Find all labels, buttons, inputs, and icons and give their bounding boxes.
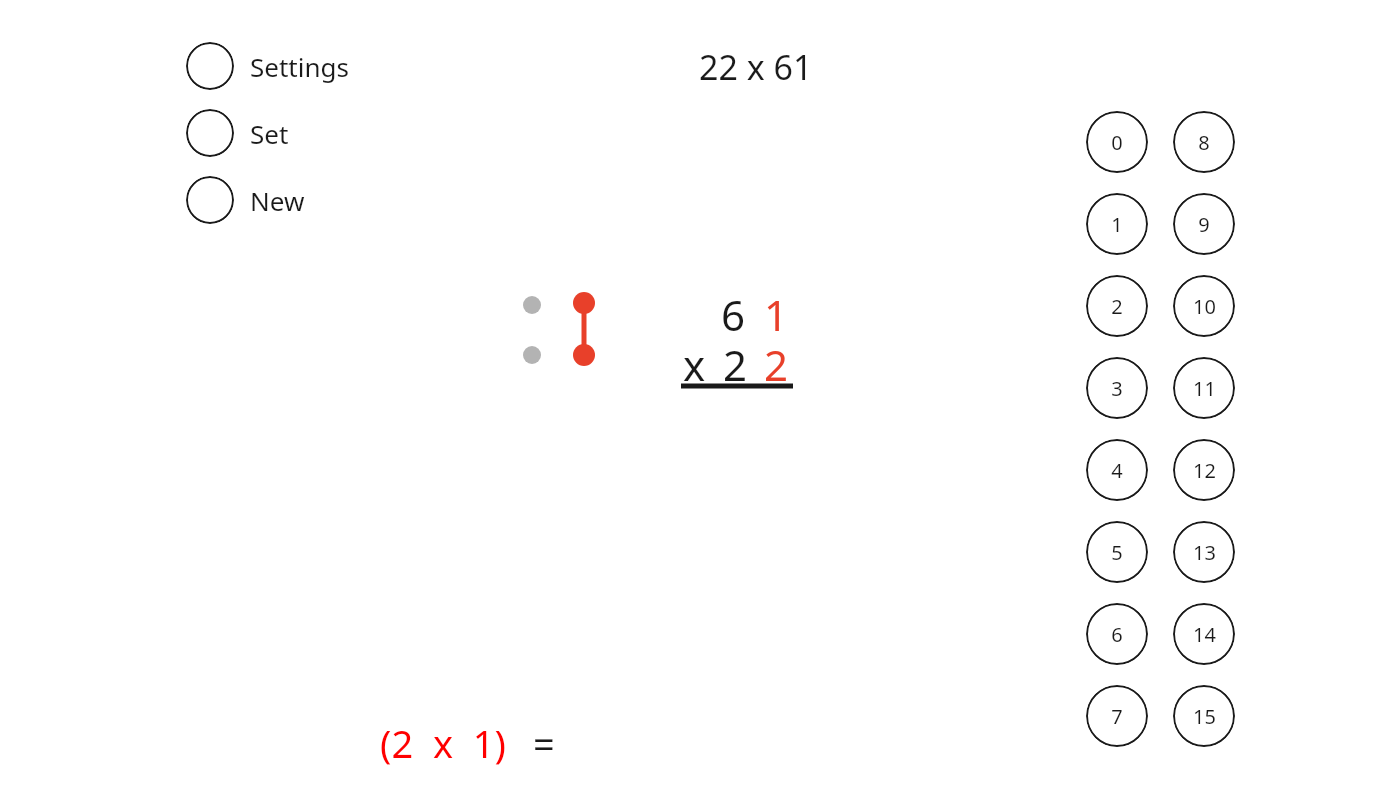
staticText: 6 [721,286,746,343]
button[interactable]: Number 11 [1173,357,1235,419]
button[interactable]: Number 10 [1173,275,1235,337]
button[interactable]: Number 5 [1086,521,1148,583]
staticText: 4 [1111,457,1123,484]
button[interactable]: Number 1 [1086,193,1148,255]
staticText: 0 [1111,129,1123,156]
staticText: 10 [1193,293,1216,320]
staticText: Set [250,116,289,151]
button[interactable]: Number 7 [1086,685,1148,747]
button[interactable]: Number 12 [1173,439,1235,501]
staticText: 8 [1198,129,1210,156]
staticText: Settings [250,49,349,84]
button[interactable]: Number 8 [1173,111,1235,173]
button[interactable]: Number 2 [1086,275,1148,337]
staticText: x [683,336,706,393]
staticText: 1 [764,286,789,343]
button[interactable]: Number 3 [1086,357,1148,419]
staticText: 13 [1193,539,1216,566]
staticText: 1 [1111,211,1123,238]
button[interactable]: Number 9 [1173,193,1235,255]
button[interactable]: Number 0 [1086,111,1148,173]
staticText: 12 [1193,457,1216,484]
button[interactable]: Number 15 [1173,685,1235,747]
staticText: (2 x 1) [380,717,506,769]
staticText: 6 [1111,621,1123,648]
staticText: 9 [1198,211,1210,238]
staticText: 7 [1111,703,1123,730]
staticText: 2 [1111,293,1123,320]
staticText: 22 x 61 [699,44,813,90]
staticText: 2 [723,336,748,393]
staticText: 3 [1111,375,1123,402]
staticText: 2 [764,336,789,393]
button[interactable]: Number 6 [1086,603,1148,665]
staticText: 5 [1111,539,1123,566]
button[interactable]: Set [186,107,356,159]
staticText: 14 [1193,621,1216,648]
button[interactable]: New [186,174,356,226]
button[interactable]: Number 14 [1173,603,1235,665]
staticText: 15 [1193,703,1216,730]
staticText: = [533,717,555,769]
button[interactable]: Settings [186,40,356,92]
button[interactable]: Number 4 [1086,439,1148,501]
staticText: 11 [1193,375,1216,402]
button[interactable]: Number 13 [1173,521,1235,583]
staticText: New [250,183,305,218]
